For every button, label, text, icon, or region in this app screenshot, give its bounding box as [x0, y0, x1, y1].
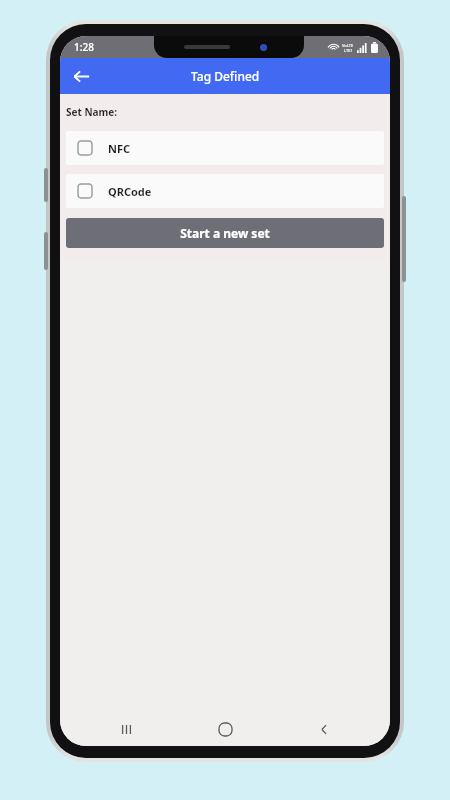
staticText: LTE1	[344, 48, 353, 53]
button[interactable]: NFC	[66, 131, 384, 165]
button[interactable]: Back	[64, 59, 98, 93]
staticText: Set Name:	[66, 105, 118, 119]
staticText: Start a new set	[180, 225, 270, 241]
button[interactable]: Back	[304, 712, 344, 746]
staticText: QRCode	[108, 184, 152, 199]
staticText: Tag Defined	[191, 68, 260, 84]
button[interactable]: Home	[205, 712, 245, 746]
staticText: 1:28	[74, 40, 94, 54]
button[interactable]: Start a new set	[66, 218, 384, 248]
button[interactable]: QRCode	[66, 174, 384, 208]
staticText: NFC	[108, 141, 131, 156]
button[interactable]: Recents	[106, 712, 146, 746]
staticText: VoLTE	[342, 43, 354, 48]
